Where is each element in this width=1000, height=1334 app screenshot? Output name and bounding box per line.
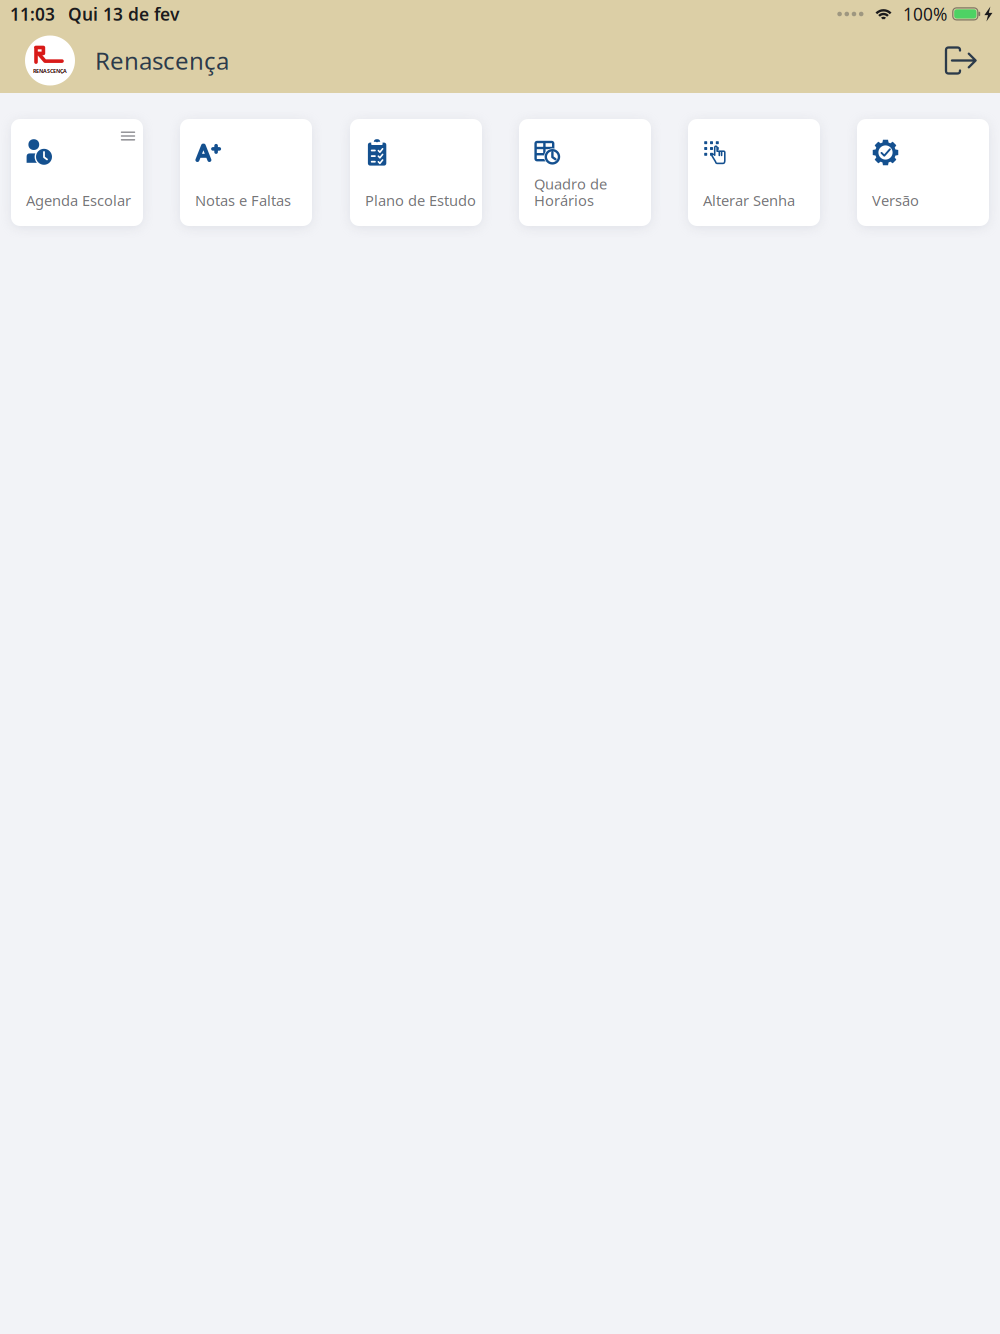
button[interactable]: Alterar Senha [688, 119, 820, 226]
button[interactable]: Sair [938, 37, 984, 83]
staticText: Alterar Senha [703, 190, 795, 210]
button[interactable]: Versão [857, 119, 989, 226]
staticText: Plano de Estudo [365, 190, 476, 210]
staticText: Versão [872, 190, 919, 210]
button[interactable]: Plano de Estudo [350, 119, 482, 226]
staticText: RENASCENÇA [33, 67, 67, 74]
button[interactable]: Quadro de [519, 119, 651, 226]
staticText: Renascença [95, 45, 229, 76]
staticText: Qui 13 de fev [68, 2, 179, 25]
staticText: Agenda Escolar [26, 190, 131, 210]
staticText: 100% [903, 2, 947, 25]
button[interactable]: Menu [115, 124, 141, 148]
button[interactable]: Agenda Escolar [11, 119, 143, 226]
staticText: Quadro de [534, 174, 607, 193]
button[interactable]: Notas e Faltas [180, 119, 312, 226]
staticText: Horários [534, 190, 594, 210]
staticText: 11:03 [10, 2, 55, 25]
staticText: Notas e Faltas [195, 190, 291, 210]
